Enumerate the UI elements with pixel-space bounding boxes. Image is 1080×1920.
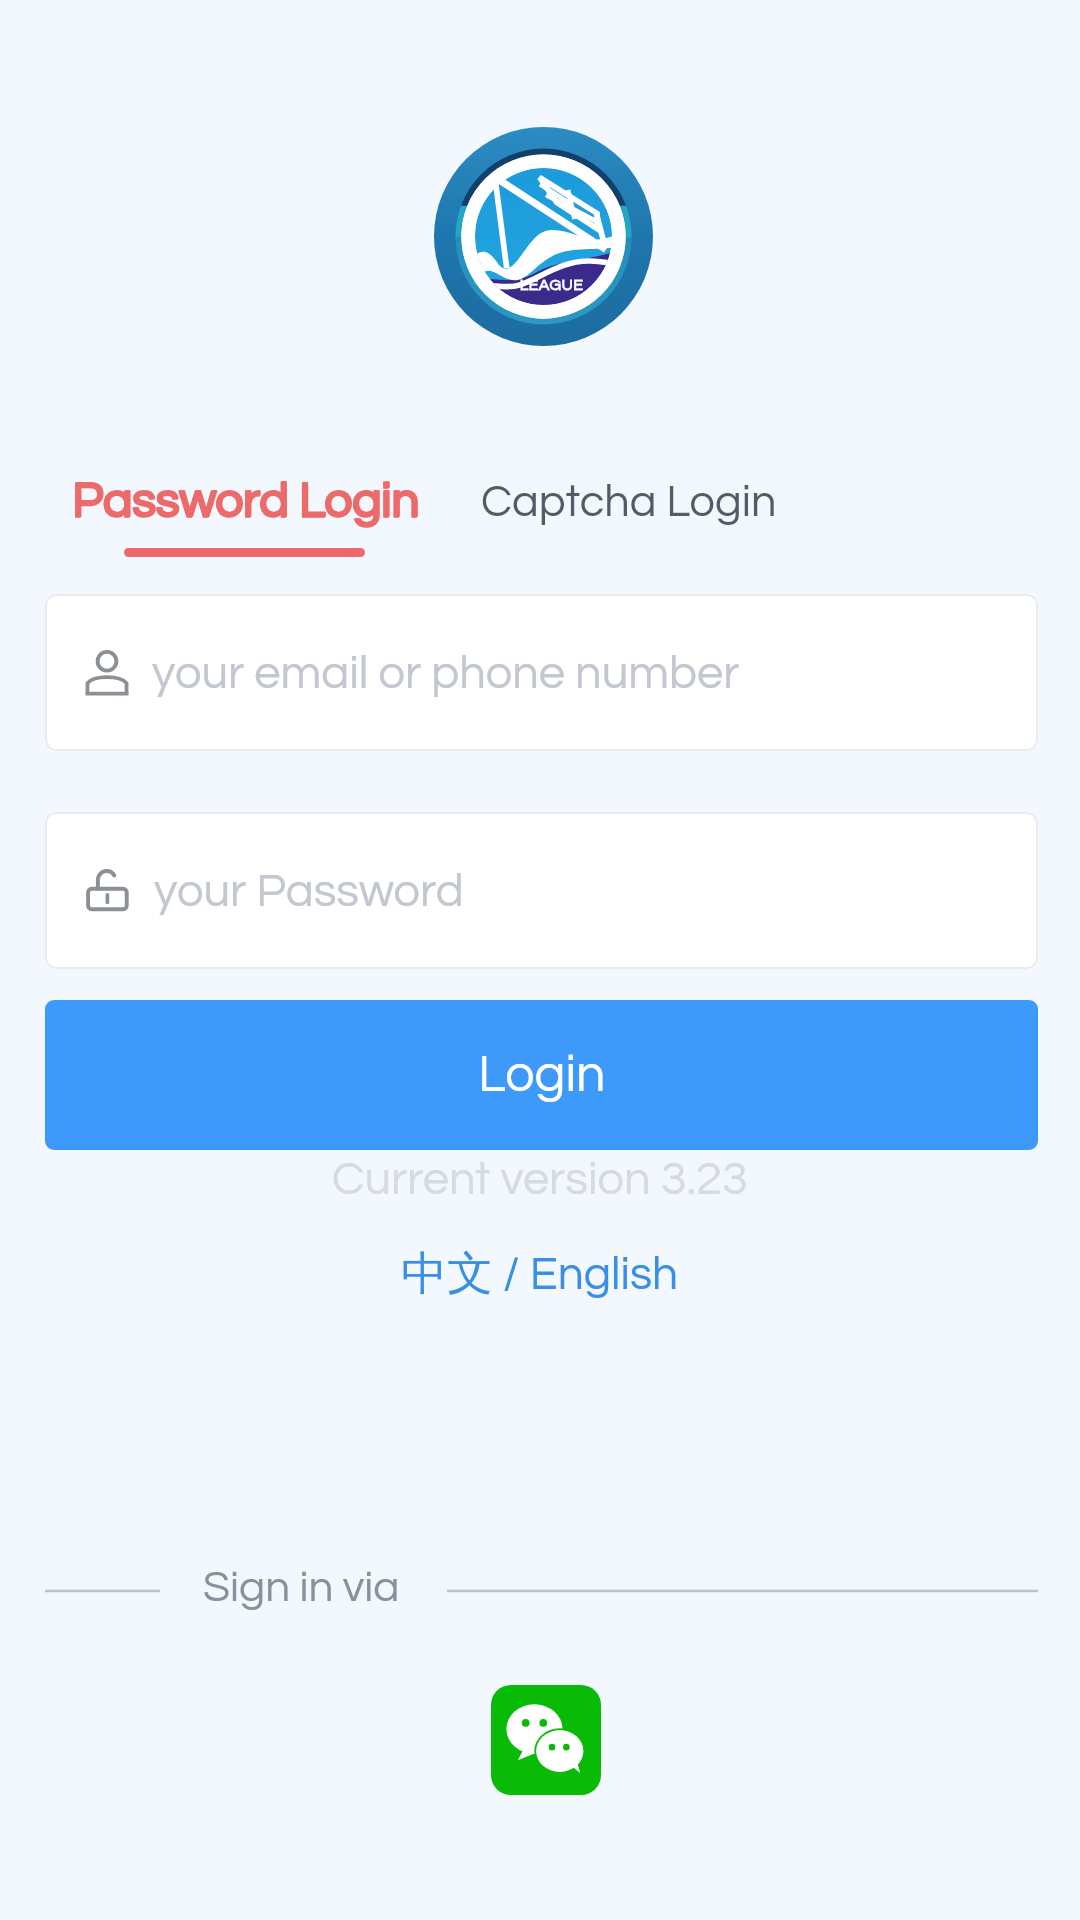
staticText: Password Login bbox=[72, 476, 419, 526]
button[interactable]: your Password bbox=[45, 812, 1038, 969]
button[interactable]: 中文 / English bbox=[387, 1241, 693, 1307]
staticText: your Password bbox=[154, 867, 464, 915]
staticText: your email or phone number bbox=[152, 649, 740, 697]
button[interactable]: your email or phone number bbox=[45, 594, 1038, 751]
staticText: LEAGUE bbox=[442, 277, 661, 293]
staticText: Password Login bbox=[73, 476, 420, 526]
button[interactable]: Password Login bbox=[60, 470, 431, 532]
staticText: Password Login bbox=[72, 477, 419, 527]
staticText: Login bbox=[478, 1048, 606, 1102]
button[interactable]: Captcha Login bbox=[469, 473, 789, 531]
staticText: Captcha Login bbox=[481, 479, 777, 525]
staticText: 中文 / English bbox=[401, 1245, 679, 1303]
staticText: Current version 3.23 bbox=[332, 1155, 748, 1203]
staticText: Sign in via bbox=[203, 1565, 400, 1610]
button[interactable]: Sign in with WeChat bbox=[491, 1685, 601, 1795]
button[interactable]: Login bbox=[45, 1000, 1038, 1150]
